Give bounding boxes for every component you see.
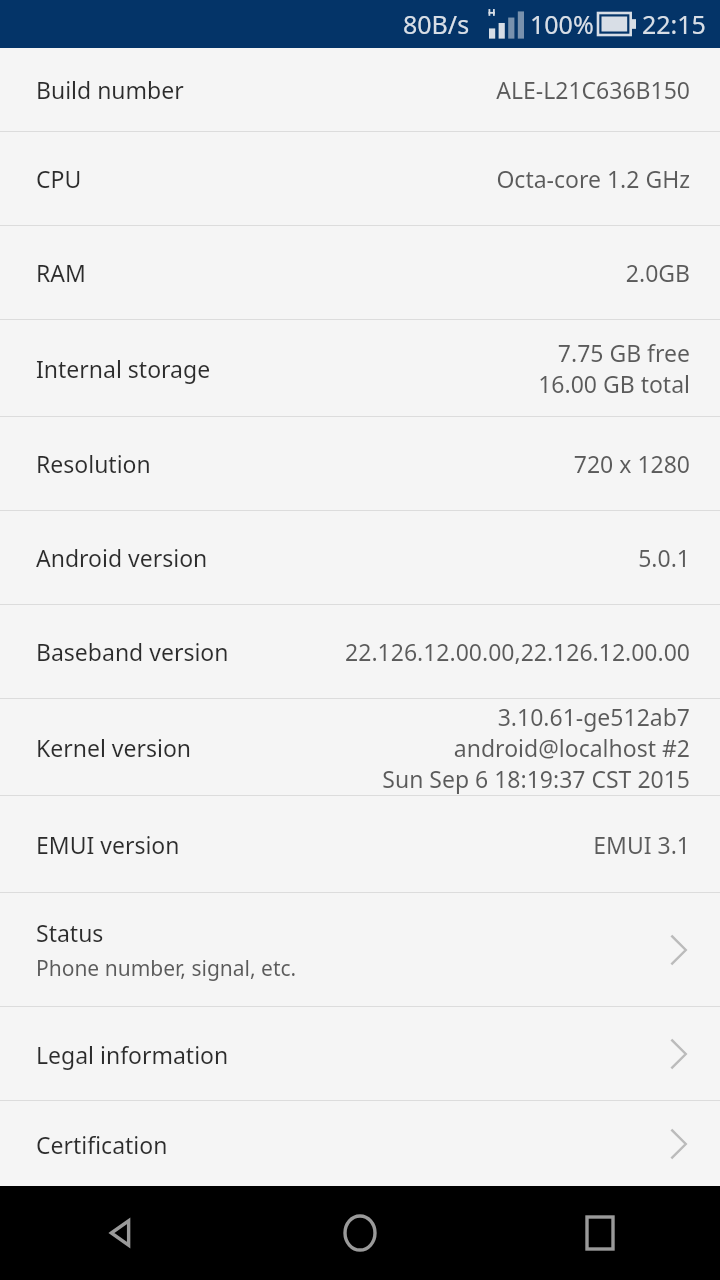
button[interactable]: EMUI version: [0, 796, 720, 892]
button[interactable]: Android version: [0, 511, 720, 604]
staticText: Phone number, signal, etc.: [36, 954, 297, 983]
staticText: EMUI 3.1: [593, 829, 690, 860]
staticText: 16.00 GB total: [538, 368, 690, 399]
staticText: 22.126.12.00.00,22.126.12.00.00: [345, 636, 690, 667]
staticText: 2.0GB: [625, 257, 690, 288]
staticText: android@localhost #2: [453, 732, 690, 763]
button[interactable]: Home: [240, 1186, 480, 1280]
button[interactable]: Build number: [0, 48, 720, 131]
staticText: 22:15: [642, 7, 706, 41]
staticText: 5.0.1: [638, 542, 690, 573]
button[interactable]: Baseband version: [0, 605, 720, 698]
staticText: 80B/s: [403, 7, 470, 41]
button[interactable]: CPU: [0, 132, 720, 225]
staticText: 100%: [530, 7, 594, 41]
staticText: Legal information: [36, 1039, 229, 1070]
button[interactable]: Resolution: [0, 417, 720, 510]
staticText: Build number: [36, 74, 184, 105]
staticText: 7.75 GB free: [557, 337, 690, 368]
staticText: Sun Sep 6 18:19:37 CST 2015: [382, 763, 690, 794]
button[interactable]: Back: [0, 1186, 240, 1280]
staticText: Certification: [36, 1129, 168, 1160]
staticText: Kernel version: [36, 732, 192, 763]
staticText: Internal storage: [36, 353, 211, 384]
staticText: Baseband version: [36, 636, 229, 667]
button[interactable]: Legal information: [0, 1007, 720, 1100]
staticText: EMUI version: [36, 829, 180, 860]
staticText: Resolution: [36, 448, 151, 479]
button[interactable]: Kernel version: [0, 699, 720, 795]
staticText: Octa-core 1.2 GHz: [496, 163, 690, 194]
button[interactable]: RAM: [0, 226, 720, 319]
button[interactable]: Certification: [0, 1101, 720, 1186]
button[interactable]: Status: [0, 893, 720, 1006]
staticText: 720 x 1280: [573, 448, 690, 479]
staticText: ALE-L21C636B150: [496, 74, 690, 105]
staticText: CPU: [36, 163, 82, 194]
button[interactable]: Recent apps: [480, 1186, 720, 1280]
staticText: Android version: [36, 542, 208, 573]
staticText: RAM: [36, 257, 86, 288]
button[interactable]: Internal storage: [0, 320, 720, 416]
staticText: Status: [36, 917, 104, 948]
staticText: 3.10.61-ge512ab7: [497, 701, 690, 732]
